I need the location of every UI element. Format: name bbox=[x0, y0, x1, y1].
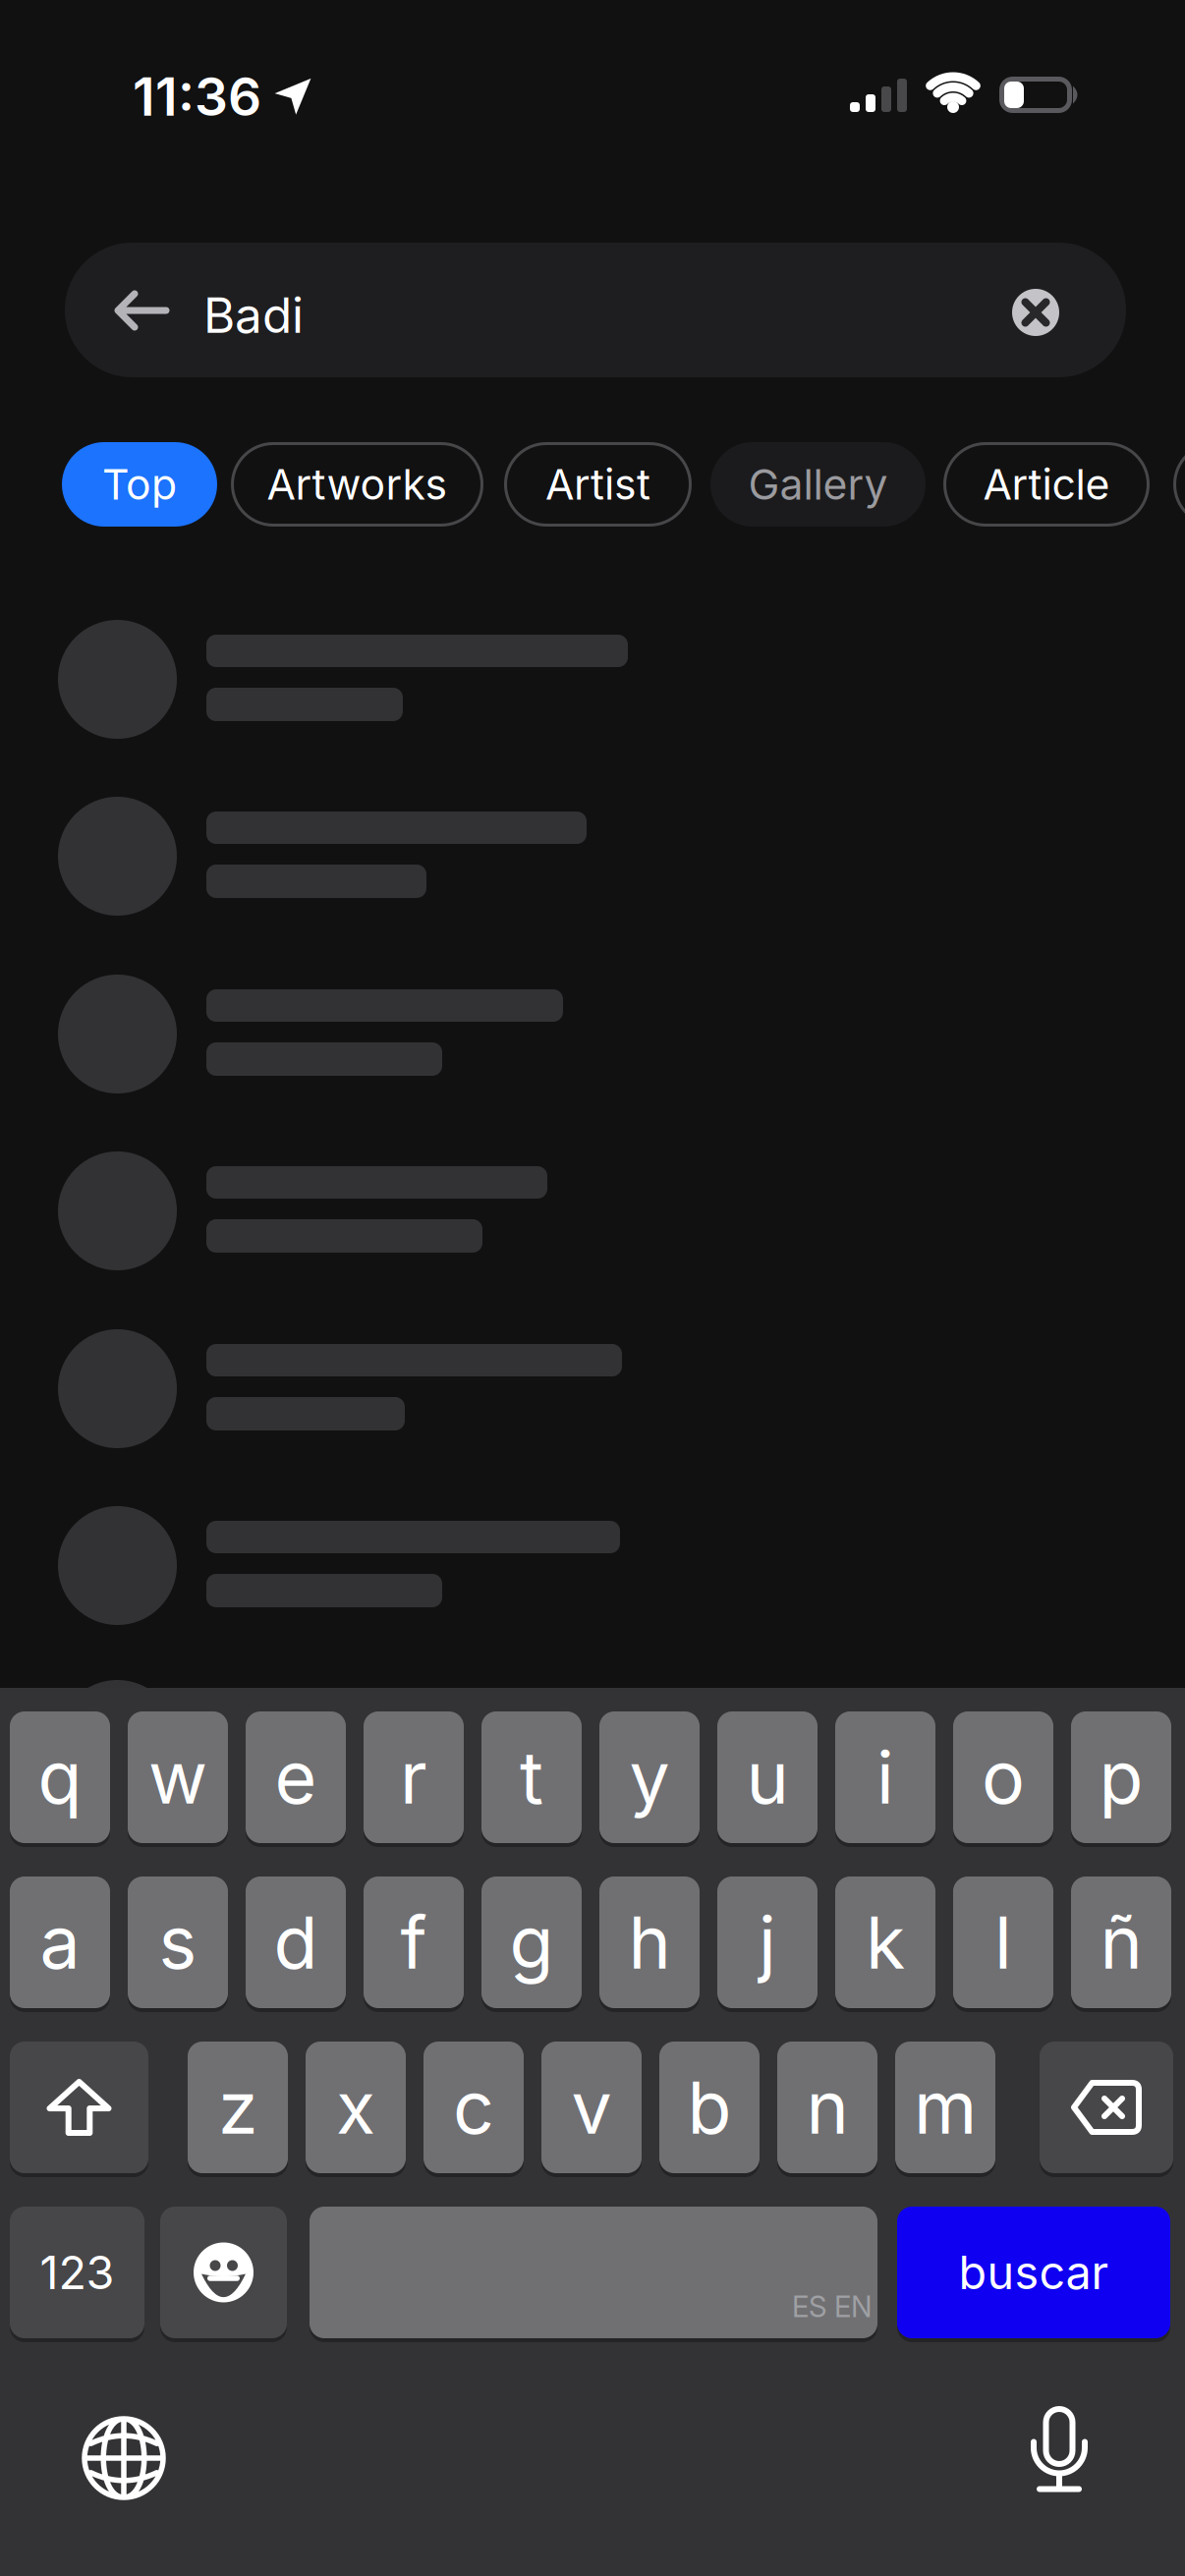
staticText: ñ bbox=[1100, 1899, 1142, 1986]
button[interactable]: t bbox=[481, 1711, 582, 1843]
staticText: r bbox=[400, 1734, 427, 1821]
button[interactable]: y bbox=[599, 1711, 700, 1843]
button[interactable]: buscar bbox=[897, 2207, 1170, 2338]
staticText: w bbox=[148, 1734, 207, 1821]
button[interactable]: k bbox=[835, 1876, 935, 2008]
staticText: l bbox=[994, 1899, 1012, 1986]
button[interactable]: z bbox=[188, 2042, 288, 2173]
button[interactable]: o bbox=[953, 1711, 1053, 1843]
button[interactable]: Emoji bbox=[160, 2207, 287, 2338]
button[interactable]: Article bbox=[943, 442, 1150, 527]
button[interactable]: Top bbox=[62, 442, 217, 527]
staticText: t bbox=[520, 1734, 543, 1821]
staticText: d bbox=[274, 1899, 318, 1986]
button[interactable]: Clear search text bbox=[1012, 289, 1059, 336]
button[interactable]: e bbox=[246, 1711, 346, 1843]
button[interactable]: Delete bbox=[1040, 2042, 1173, 2173]
button[interactable]: p bbox=[1071, 1711, 1171, 1843]
button[interactable]: q bbox=[10, 1711, 110, 1843]
button[interactable]: l bbox=[953, 1876, 1053, 2008]
staticText: buscar bbox=[959, 2245, 1109, 2300]
button[interactable]: Dictate bbox=[1030, 2409, 1089, 2511]
button[interactable]: v bbox=[541, 2042, 642, 2173]
button[interactable]: 123 bbox=[10, 2207, 144, 2338]
staticText: m bbox=[914, 2064, 977, 2151]
button[interactable]: j bbox=[717, 1876, 818, 2008]
button[interactable]: r bbox=[364, 1711, 464, 1843]
staticText: Top bbox=[102, 459, 177, 510]
button[interactable]: x bbox=[306, 2042, 406, 2173]
button[interactable]: Gallery bbox=[710, 442, 926, 527]
button[interactable]: m bbox=[895, 2042, 995, 2173]
button[interactable]: w bbox=[128, 1711, 228, 1843]
button[interactable]: Shift bbox=[10, 2042, 148, 2173]
button[interactable]: b bbox=[659, 2042, 760, 2173]
staticText: ES EN bbox=[792, 2289, 873, 2324]
staticText: Artworks bbox=[267, 459, 448, 510]
button[interactable]: i bbox=[835, 1711, 935, 1843]
button[interactable]: a bbox=[10, 1876, 110, 2008]
staticText: q bbox=[38, 1734, 82, 1821]
button[interactable]: Space bbox=[310, 2207, 877, 2338]
staticText: a bbox=[40, 1899, 80, 1986]
staticText: k bbox=[866, 1899, 905, 1986]
button[interactable]: ñ bbox=[1071, 1876, 1171, 2008]
staticText: e bbox=[275, 1734, 317, 1821]
staticText: i bbox=[876, 1734, 894, 1821]
staticText: Badi bbox=[203, 286, 304, 345]
staticText: x bbox=[336, 2064, 375, 2151]
staticText: Gallery bbox=[748, 459, 888, 510]
staticText: 11:36 bbox=[133, 65, 261, 128]
staticText: v bbox=[571, 2064, 612, 2151]
staticText: f bbox=[400, 1899, 427, 1986]
button[interactable]: h bbox=[599, 1876, 700, 2008]
button[interactable]: f bbox=[364, 1876, 464, 2008]
button[interactable]: Artworks bbox=[231, 442, 483, 527]
staticText: g bbox=[509, 1899, 554, 1986]
button[interactable]: Auction bbox=[1173, 442, 1185, 527]
staticText: n bbox=[806, 2064, 848, 2151]
button[interactable]: Artist bbox=[504, 442, 692, 527]
button[interactable]: n bbox=[777, 2042, 877, 2173]
button[interactable]: Next keyboard bbox=[82, 2416, 166, 2500]
button[interactable]: c bbox=[423, 2042, 524, 2173]
button[interactable]: Back bbox=[104, 277, 178, 344]
staticText: y bbox=[629, 1734, 670, 1821]
staticText: j bbox=[759, 1899, 776, 1986]
staticText: p bbox=[1099, 1734, 1143, 1821]
staticText: b bbox=[687, 2064, 732, 2151]
button[interactable]: u bbox=[717, 1711, 818, 1843]
button[interactable]: s bbox=[128, 1876, 228, 2008]
button[interactable]: g bbox=[481, 1876, 582, 2008]
staticText: 123 bbox=[40, 2245, 114, 2300]
staticText: h bbox=[628, 1899, 671, 1986]
staticText: z bbox=[218, 2064, 257, 2151]
staticText: u bbox=[746, 1734, 789, 1821]
staticText: s bbox=[159, 1899, 197, 1986]
staticText: c bbox=[453, 2064, 494, 2151]
staticText: o bbox=[982, 1734, 1025, 1821]
staticText: Article bbox=[983, 459, 1110, 510]
button[interactable]: d bbox=[246, 1876, 346, 2008]
staticText: Artist bbox=[545, 459, 650, 510]
